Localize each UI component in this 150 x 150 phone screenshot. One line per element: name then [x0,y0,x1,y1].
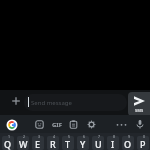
button[interactable] [69,120,78,129]
button[interactable]: Y [77,136,89,150]
button[interactable]: T [62,136,74,150]
button[interactable]: Q [2,136,14,150]
button[interactable] [9,94,23,108]
button[interactable]: SMS [128,92,150,116]
button[interactable]: GIF [49,120,64,130]
staticText: 6 [83,134,86,139]
button[interactable] [6,119,18,131]
staticText: 2 [23,134,26,139]
staticText: 1 [8,134,11,139]
staticText: W [19,138,28,150]
staticText: GIF [52,121,62,129]
staticText: R [50,138,56,150]
staticText: E [35,138,41,150]
staticText: 5 [68,134,71,139]
button[interactable]: O [122,136,134,150]
staticText: Send message [31,99,72,107]
staticText: 8 [113,134,116,139]
button[interactable]: U [92,136,104,150]
button[interactable] [135,119,145,130]
staticText: U [95,138,102,150]
staticText: 0 [143,134,146,139]
button[interactable] [87,120,96,129]
staticText: T [65,138,71,150]
button[interactable]: Send message [24,94,127,111]
button[interactable] [35,120,44,129]
button[interactable]: E [32,136,44,150]
staticText: O [124,138,132,150]
button[interactable]: P [137,136,149,150]
staticText: P [140,138,146,150]
staticText: 7 [98,134,101,139]
staticText: SMS [135,108,144,113]
button[interactable] [115,120,128,129]
staticText: I [111,138,115,150]
staticText: 4 [53,134,56,139]
staticText: Q [4,138,12,150]
button[interactable]: W [17,136,29,150]
button[interactable]: R [47,136,59,150]
button[interactable]: I [107,136,119,150]
staticText: Y [80,138,86,150]
staticText: 3 [38,134,41,139]
staticText: 9 [128,134,131,139]
